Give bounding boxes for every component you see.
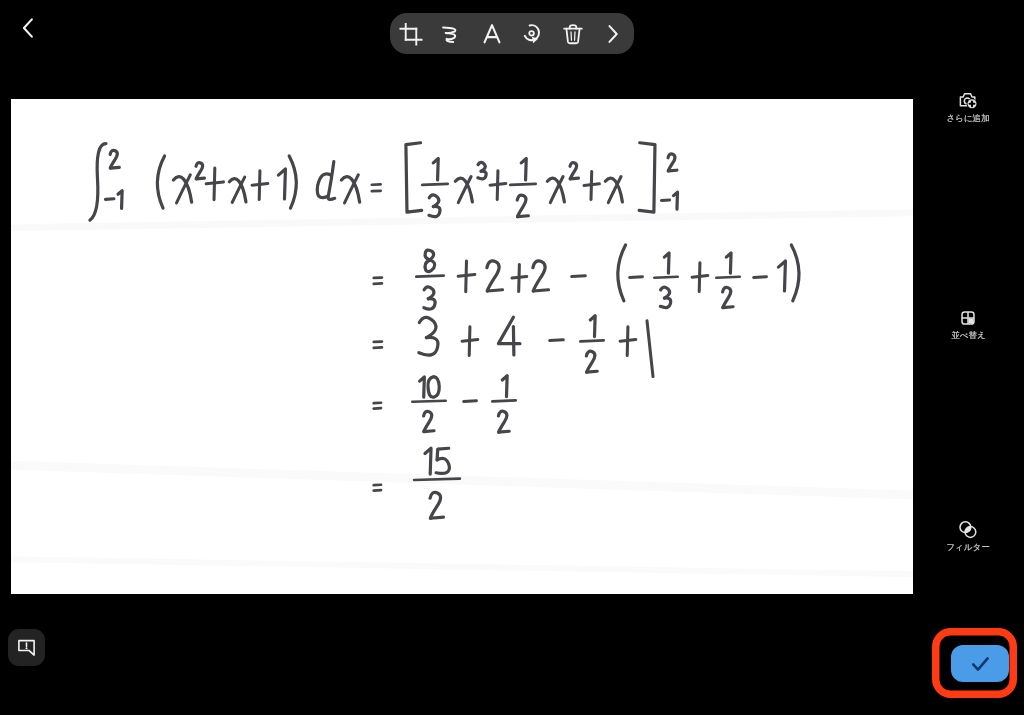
button[interactable]: Delete [553, 13, 593, 54]
button[interactable]: Rotate [512, 13, 552, 54]
button[interactable]: Done [951, 645, 1009, 682]
button[interactable]: More [593, 13, 633, 54]
button[interactable]: Markup [431, 13, 471, 54]
staticText: フィルター [946, 542, 990, 553]
button[interactable]: Add text [472, 13, 512, 54]
button[interactable]: Back [6, 6, 50, 50]
button[interactable]: Send feedback [8, 629, 45, 666]
button[interactable]: フィルター [930, 520, 1006, 553]
staticText: 並べ替え [951, 330, 986, 341]
button[interactable]: 並べ替え [930, 308, 1006, 341]
staticText: さらに追加 [946, 113, 990, 124]
button[interactable]: さらに追加 [930, 91, 1006, 124]
button[interactable]: Scanned page preview [11, 99, 913, 594]
button[interactable]: Crop [391, 13, 431, 54]
